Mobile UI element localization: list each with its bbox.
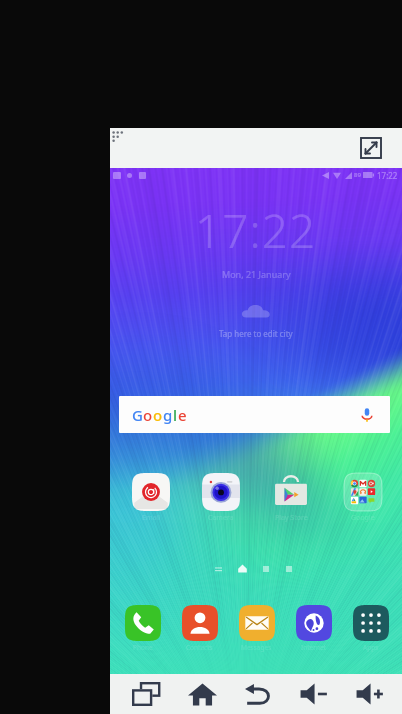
staticText: G (132, 405, 143, 425)
button[interactable]: Email (126, 473, 176, 523)
staticText: 17:22 (377, 170, 398, 181)
button[interactable]: Volume up (345, 674, 395, 714)
button[interactable]: G (119, 396, 390, 433)
staticText: 89 (354, 171, 361, 179)
staticText: o (153, 405, 163, 425)
staticText: g (163, 405, 173, 425)
staticText: Camera (208, 513, 234, 523)
button[interactable]: Camera (196, 473, 246, 523)
staticText: l (173, 405, 178, 425)
button[interactable]: Contacts (175, 605, 224, 652)
button[interactable]: Home (177, 674, 227, 714)
button[interactable]: Internet (289, 605, 338, 652)
staticText: Google (351, 513, 375, 523)
button[interactable]: Phone (118, 605, 167, 652)
staticText: Phone (133, 643, 153, 652)
button[interactable]: Back (233, 674, 283, 714)
button[interactable]: Google (338, 473, 388, 523)
staticText: Contacts (186, 643, 213, 652)
staticText: Mon, 21 January (222, 268, 291, 280)
staticText: e (178, 405, 187, 425)
button[interactable]: Recents (121, 674, 171, 714)
button[interactable]: Play Store (266, 473, 316, 523)
staticText: Apps (363, 643, 379, 652)
staticText: o (143, 405, 153, 425)
staticText: Tap here to edit city (219, 328, 293, 339)
button[interactable]: Messages (232, 605, 281, 652)
staticText: 17:22 (195, 199, 317, 262)
staticText: Play Store (275, 513, 308, 523)
staticText: Internet (301, 643, 326, 652)
button[interactable]: Fullscreen (357, 134, 385, 162)
staticText: Messages (241, 643, 272, 652)
button[interactable]: Apps (346, 605, 395, 652)
staticText: Email (142, 513, 160, 523)
button[interactable]: Volume down (289, 674, 339, 714)
